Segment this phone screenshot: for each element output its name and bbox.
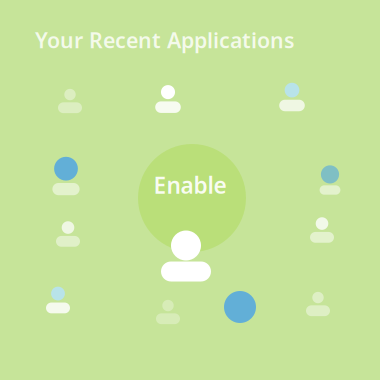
staticText: Enable (153, 170, 226, 200)
button[interactable]: Contact (153, 297, 183, 327)
button[interactable]: Contact (307, 215, 337, 245)
button[interactable]: Contact (276, 81, 308, 113)
button[interactable]: Contact (49, 159, 83, 193)
button[interactable]: Contact (317, 167, 343, 193)
button[interactable]: Contact (43, 285, 73, 315)
button[interactable]: Contact (303, 289, 333, 319)
button[interactable]: Contact (152, 83, 184, 115)
button[interactable]: You (160, 230, 212, 282)
button[interactable]: Contact (53, 219, 83, 249)
staticText: Your Recent Applications (35, 26, 295, 54)
button[interactable]: Your Recent Applications (35, 26, 295, 54)
button[interactable]: Contact (55, 86, 85, 116)
button[interactable]: Selected contact (224, 291, 256, 323)
